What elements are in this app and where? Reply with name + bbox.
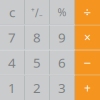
staticText: − — [83, 54, 91, 71]
button[interactable]: Plus minus — [25, 0, 49, 24]
button[interactable]: 1 — [0, 76, 24, 100]
staticText: 9 — [58, 28, 66, 46]
button[interactable]: Clear — [0, 0, 24, 24]
button[interactable]: 9 — [50, 25, 74, 49]
staticText: 7 — [8, 28, 16, 46]
staticText: 5 — [33, 54, 41, 71]
staticText: 1 — [8, 79, 16, 97]
button[interactable]: 6 — [50, 50, 74, 75]
staticText: × — [84, 29, 91, 45]
button[interactable]: Add — [75, 76, 100, 100]
button[interactable]: 5 — [25, 50, 49, 75]
button[interactable]: 4 — [0, 50, 24, 75]
button[interactable]: Subtract — [75, 50, 100, 75]
staticText: 6 — [58, 54, 66, 71]
staticText: ⁺∕₋ — [31, 5, 43, 19]
button[interactable]: Multiply — [75, 25, 100, 49]
button[interactable]: Divide — [75, 0, 100, 24]
staticText: % — [57, 5, 66, 19]
button[interactable]: 2 — [25, 76, 49, 100]
button[interactable]: 3 — [50, 76, 74, 100]
staticText: 3 — [58, 79, 66, 97]
button[interactable]: Percent — [50, 0, 74, 24]
staticText: ÷ — [83, 3, 91, 21]
staticText: c — [9, 3, 15, 21]
button[interactable]: 8 — [25, 25, 49, 49]
staticText: 8 — [33, 28, 41, 46]
staticText: 4 — [8, 54, 16, 71]
staticText: + — [84, 80, 91, 96]
button[interactable]: 7 — [0, 25, 24, 49]
staticText: 2 — [33, 79, 41, 97]
